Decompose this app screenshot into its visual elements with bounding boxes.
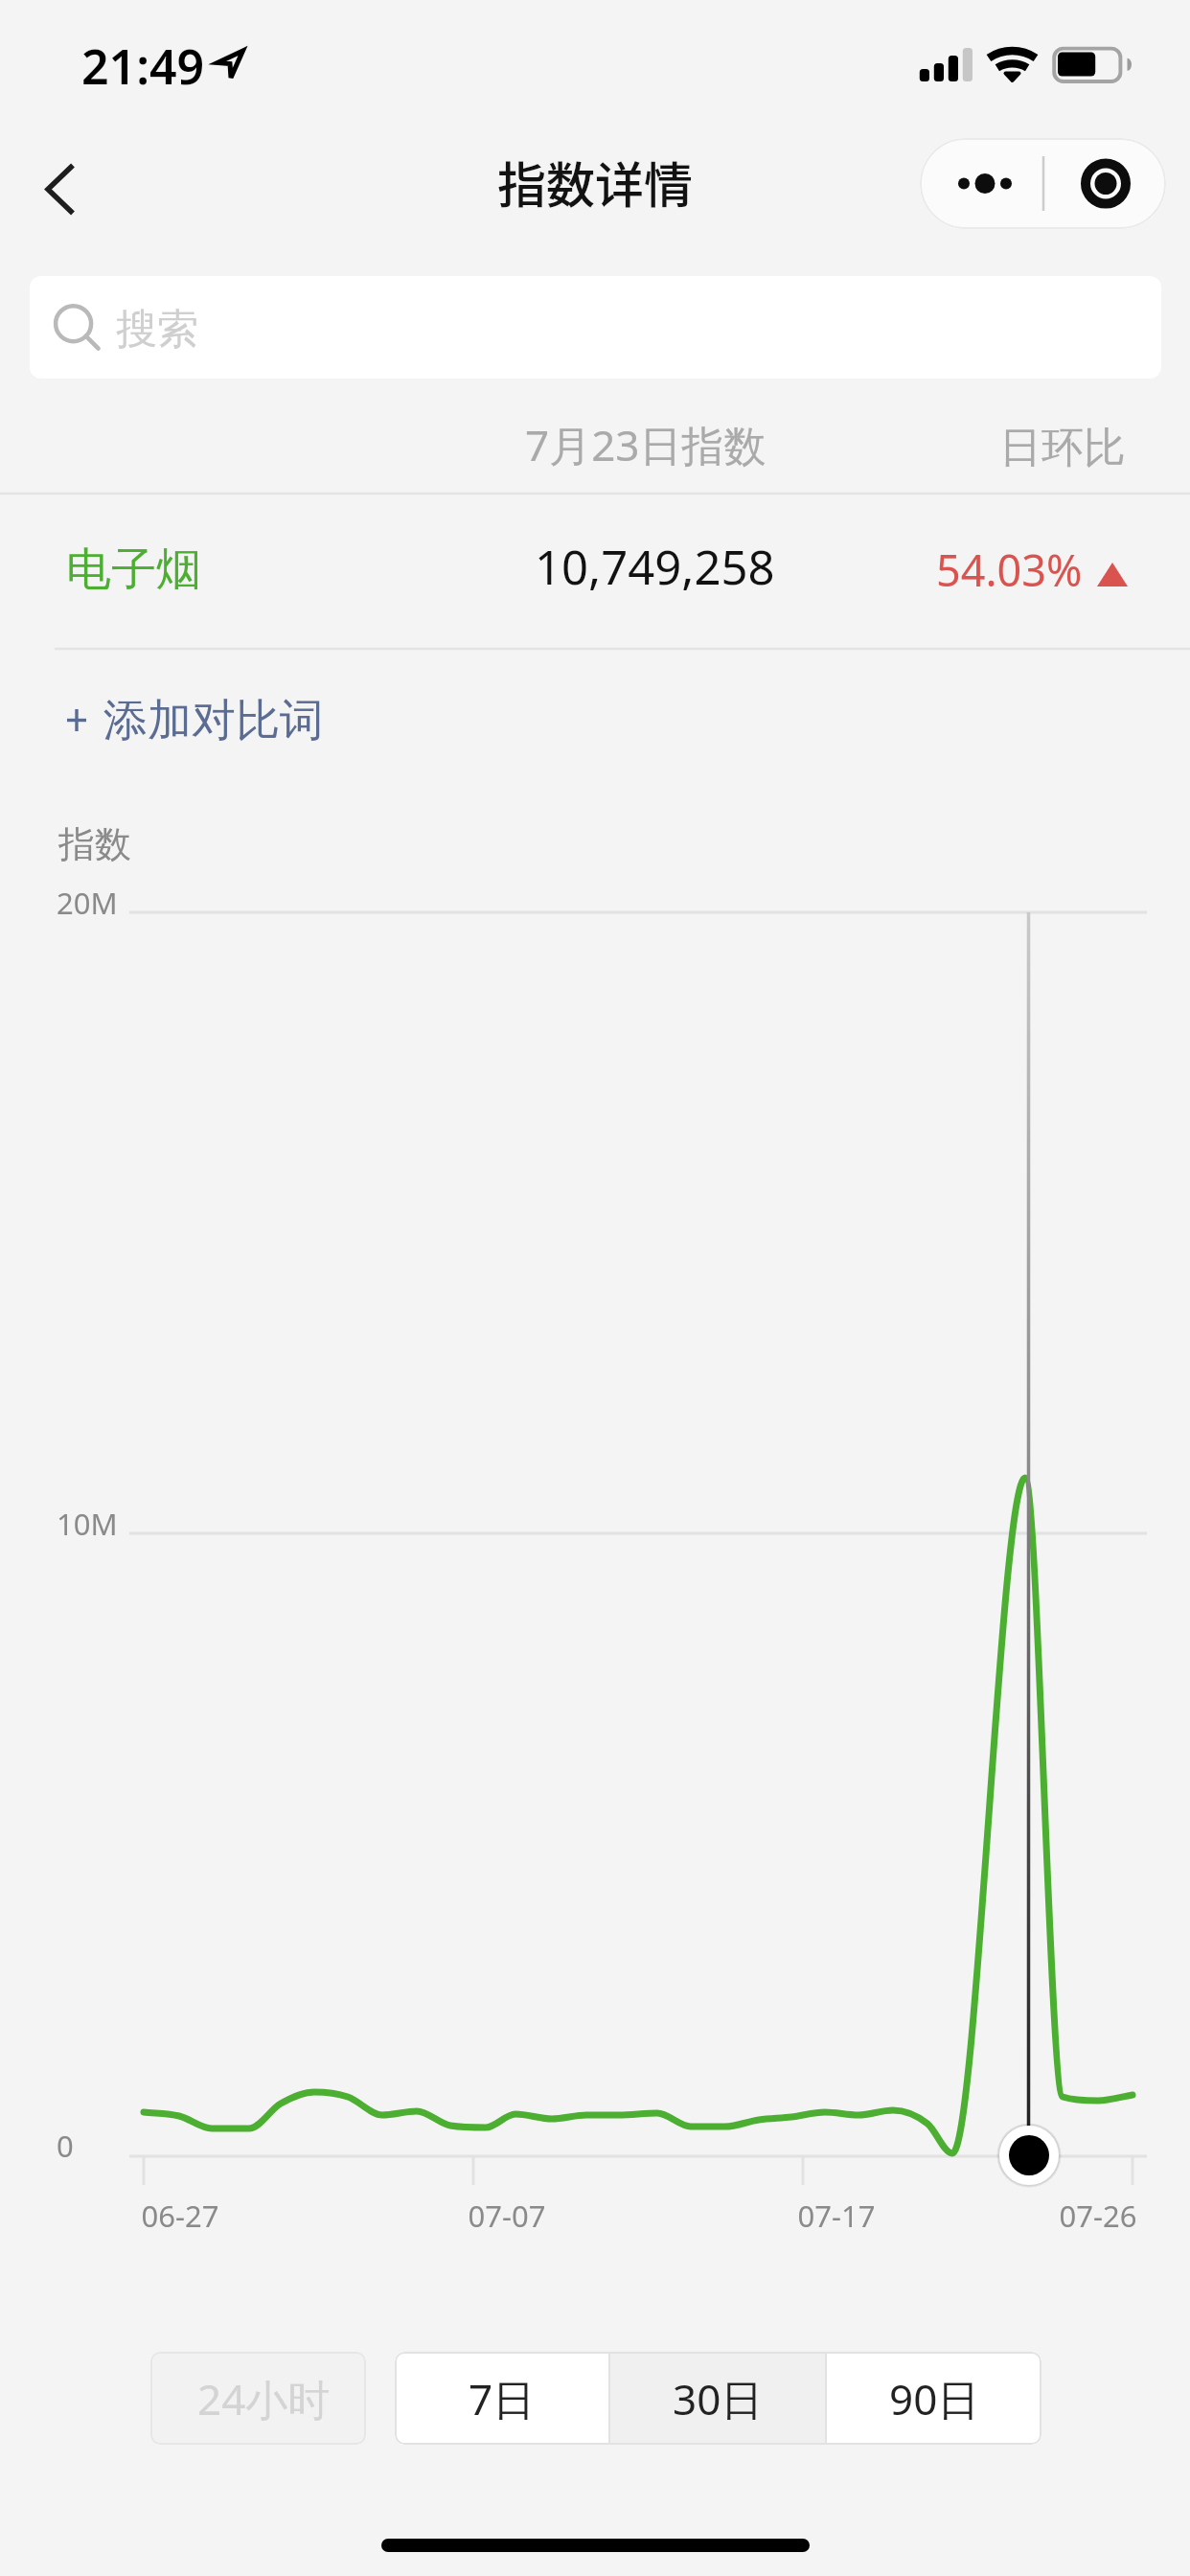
button[interactable]: 30日 [610,2352,825,2445]
staticText: 54.03% [936,540,1083,599]
button[interactable]: 7日 [395,2352,608,2445]
staticText: 24小时 [197,2370,331,2427]
button[interactable]: 24小时 [150,2352,366,2445]
staticText: 07-07 [440,2196,574,2236]
button[interactable]: 搜索 [30,276,1161,379]
staticText: 10,749,258 [535,535,775,599]
staticText: 日环比 [999,422,1126,474]
button[interactable]: More options [920,138,1166,229]
staticText: 30日 [673,2370,764,2427]
staticText: 7日 [469,2370,536,2427]
staticText: 添加对比词 [103,693,324,748]
button[interactable]: 电子烟 [0,486,1190,648]
staticText: 90日 [889,2370,980,2427]
staticText: 06-27 [113,2196,247,2236]
button[interactable]: 添加对比词 [48,680,335,767]
staticText: 搜索 [116,304,198,356]
staticText: 指数 [58,821,131,867]
staticText: 20M [57,883,118,923]
staticText: 指数详情 [497,147,694,218]
staticText: 7月23日指数 [525,416,767,473]
staticText: 07-17 [769,2196,904,2236]
staticText: 0 [57,2126,74,2166]
staticText: 10M [57,1504,118,1544]
staticText: 电子烟 [66,541,201,598]
button[interactable]: 90日 [827,2352,1041,2445]
staticText: 07-26 [1031,2196,1165,2236]
staticText: 21:49 [81,34,205,99]
button[interactable]: Back [24,141,120,237]
